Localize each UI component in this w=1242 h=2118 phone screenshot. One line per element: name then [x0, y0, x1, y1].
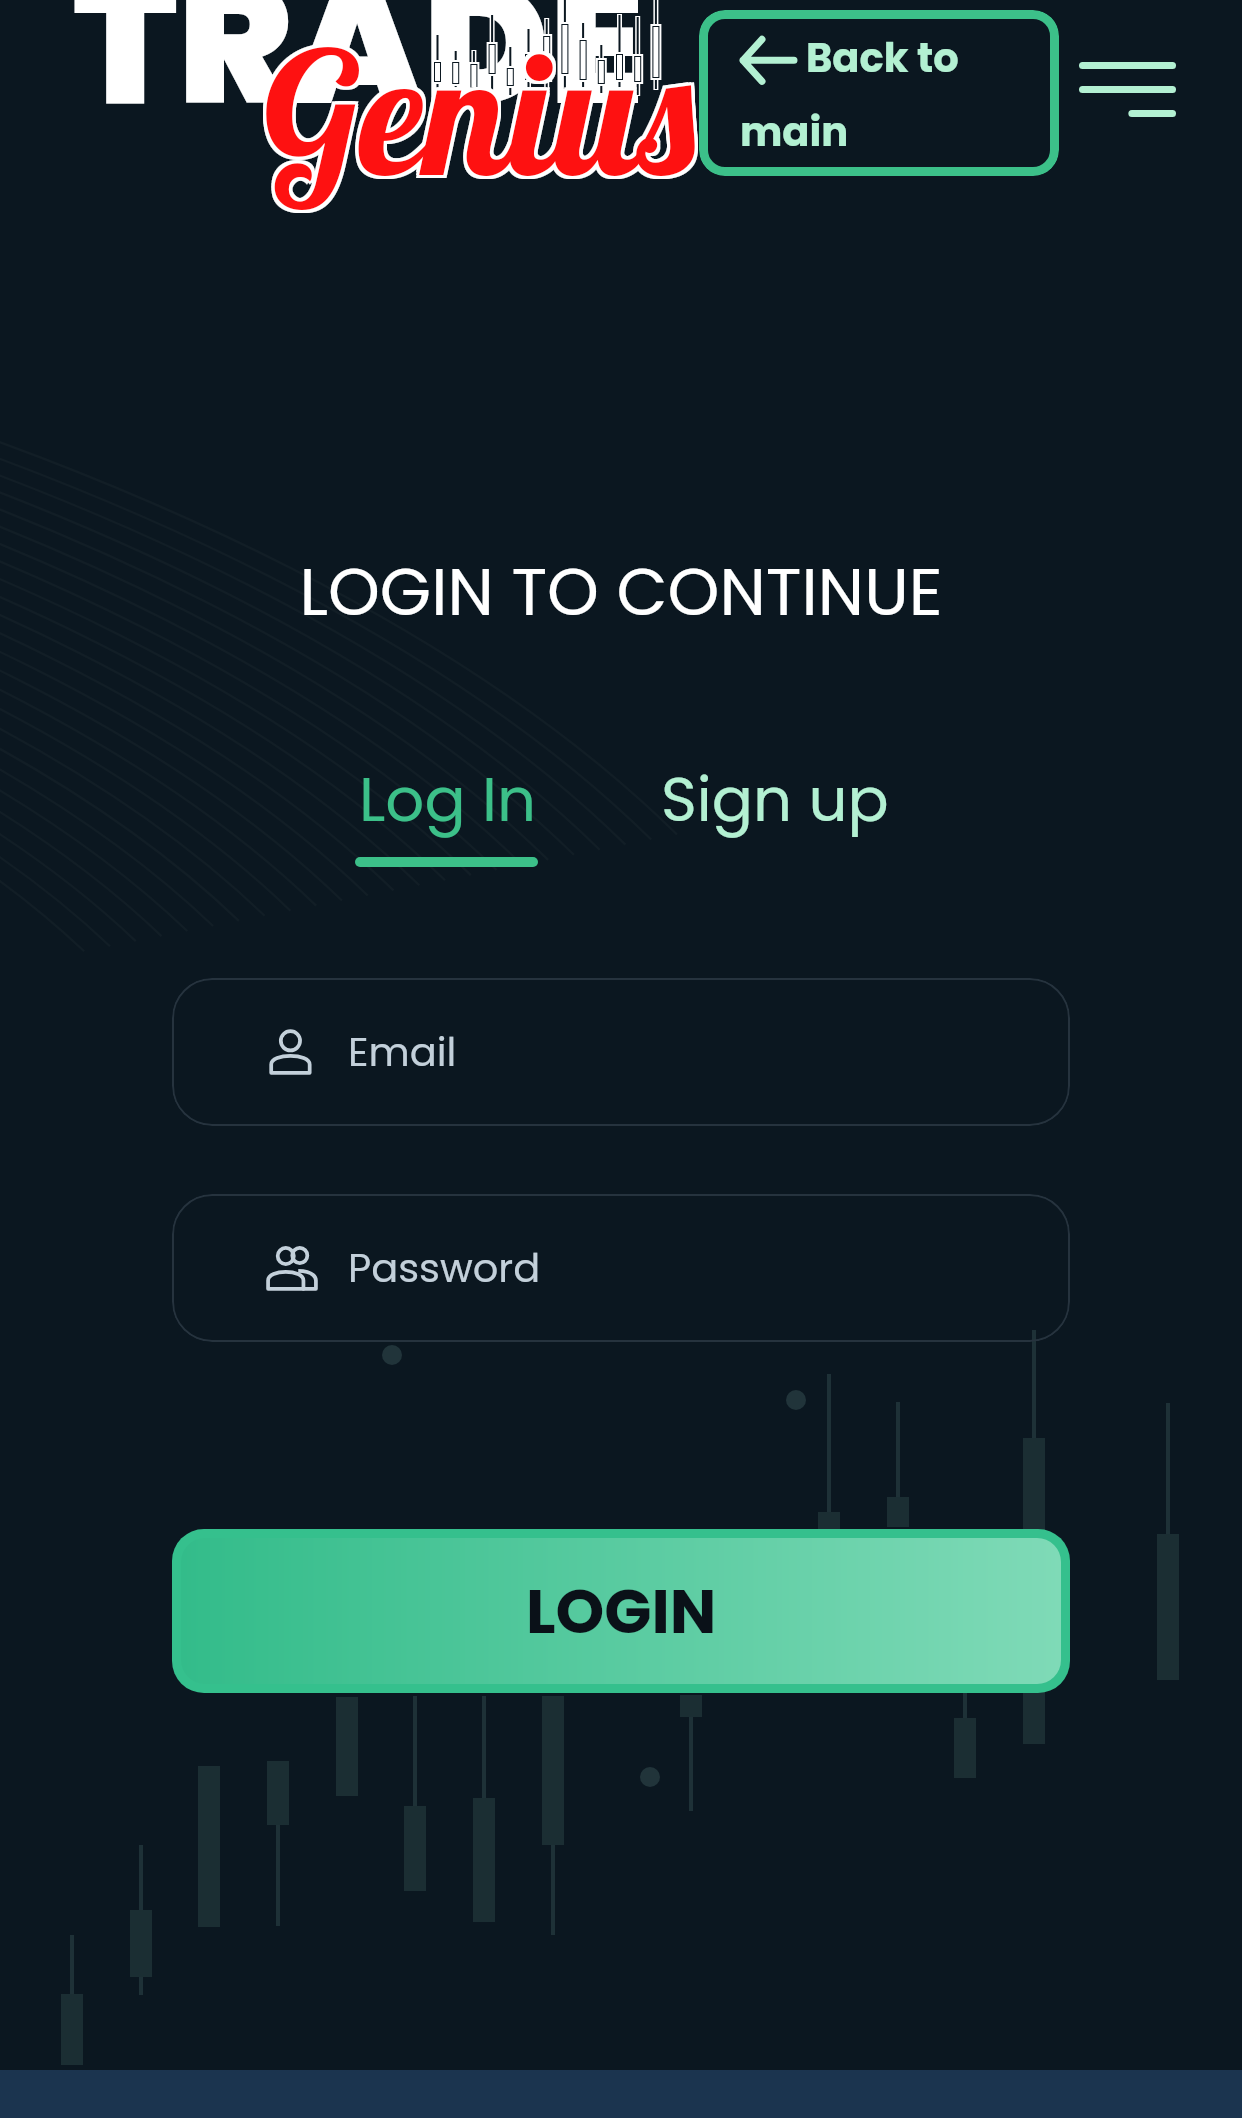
button[interactable]: LOGIN [181, 1538, 1061, 1684]
staticText: Genius [266, 9, 698, 220]
staticText: Genius [263, 6, 695, 217]
staticText: Genius [260, 6, 692, 217]
staticText: Back to [806, 30, 959, 86]
button[interactable]: Open menu [1045, 30, 1210, 150]
staticText: Genius [266, 3, 698, 214]
staticText: main [740, 104, 849, 160]
button[interactable]: Log In [355, 757, 540, 842]
staticText: Password [348, 1240, 541, 1296]
staticText: Sign up [661, 757, 889, 842]
staticText: Genius [260, 9, 692, 220]
button[interactable]: Email [172, 978, 1070, 1126]
staticText: LOGIN TO CONTINUE [0, 546, 1242, 638]
staticText: TRADE [73, 0, 644, 163]
staticText: Genius [266, 6, 698, 217]
button[interactable]: Sign up [655, 757, 895, 842]
button[interactable]: Password [172, 1194, 1070, 1342]
staticText: LOGIN [526, 1568, 717, 1655]
staticText: Log In [359, 757, 536, 842]
staticText: Genius [263, 3, 695, 214]
button[interactable]: Back to [699, 10, 1059, 176]
staticText: Email [348, 1024, 457, 1080]
staticText: Genius [260, 3, 692, 214]
staticText: Genius [263, 9, 695, 220]
